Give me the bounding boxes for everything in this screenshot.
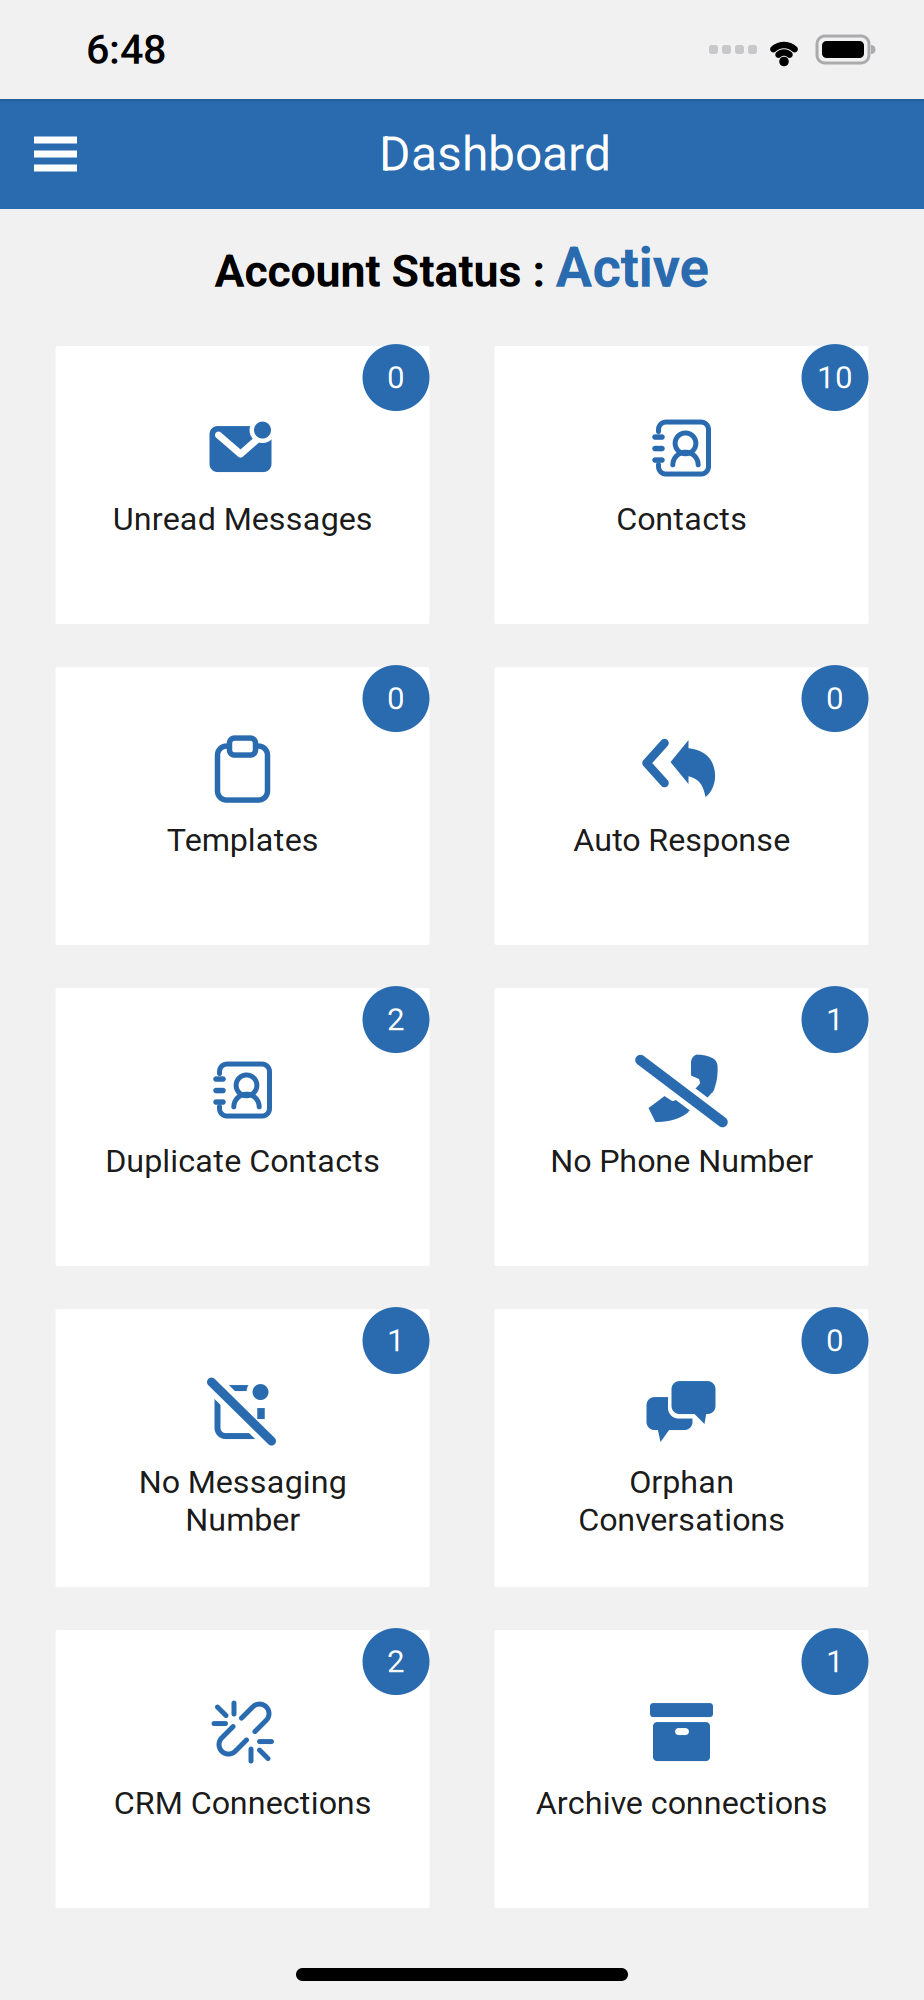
staticText: Orphan Conversations (578, 1463, 785, 1539)
staticText: Contacts (616, 500, 747, 538)
staticText: Archive connections (535, 1784, 827, 1822)
staticText: Auto Response (573, 821, 790, 859)
button[interactable]: CRM Connections (55, 1630, 429, 1908)
staticText: No Phone Number (550, 1142, 813, 1180)
staticText: 1 (826, 1001, 844, 1038)
staticText: 2 (387, 1001, 405, 1038)
staticText: 0 (826, 1322, 844, 1359)
button[interactable]: Auto Response (494, 667, 868, 945)
button[interactable]: Duplicate Contacts (55, 988, 429, 1266)
button[interactable]: No Phone Number (494, 988, 868, 1266)
button[interactable]: No Messaging Number (55, 1309, 429, 1587)
staticText: 1 (826, 1643, 844, 1680)
staticText: Active (555, 236, 709, 300)
staticText: Duplicate Contacts (105, 1142, 380, 1180)
staticText: 0 (826, 680, 844, 717)
button[interactable]: Unread Messages (55, 346, 429, 624)
staticText: 0 (387, 359, 405, 396)
staticText: 6:48 (86, 25, 166, 74)
staticText: No Messaging Number (138, 1463, 346, 1539)
button[interactable]: Contacts (494, 346, 868, 624)
button[interactable]: Menu (0, 99, 97, 209)
button[interactable]: Templates (55, 667, 429, 945)
staticText: 10 (817, 359, 853, 396)
staticText: Unread Messages (112, 500, 372, 538)
staticText: 1 (387, 1322, 405, 1359)
staticText: Dashboard (379, 126, 611, 182)
staticText: Templates (166, 821, 318, 859)
staticText: CRM Connections (113, 1784, 371, 1822)
staticText: 0 (387, 680, 405, 717)
staticText: 2 (387, 1643, 405, 1680)
staticText: Account Status : (214, 245, 545, 298)
button[interactable]: Archive connections (494, 1630, 868, 1908)
button[interactable]: Orphan Conversations (494, 1309, 868, 1587)
